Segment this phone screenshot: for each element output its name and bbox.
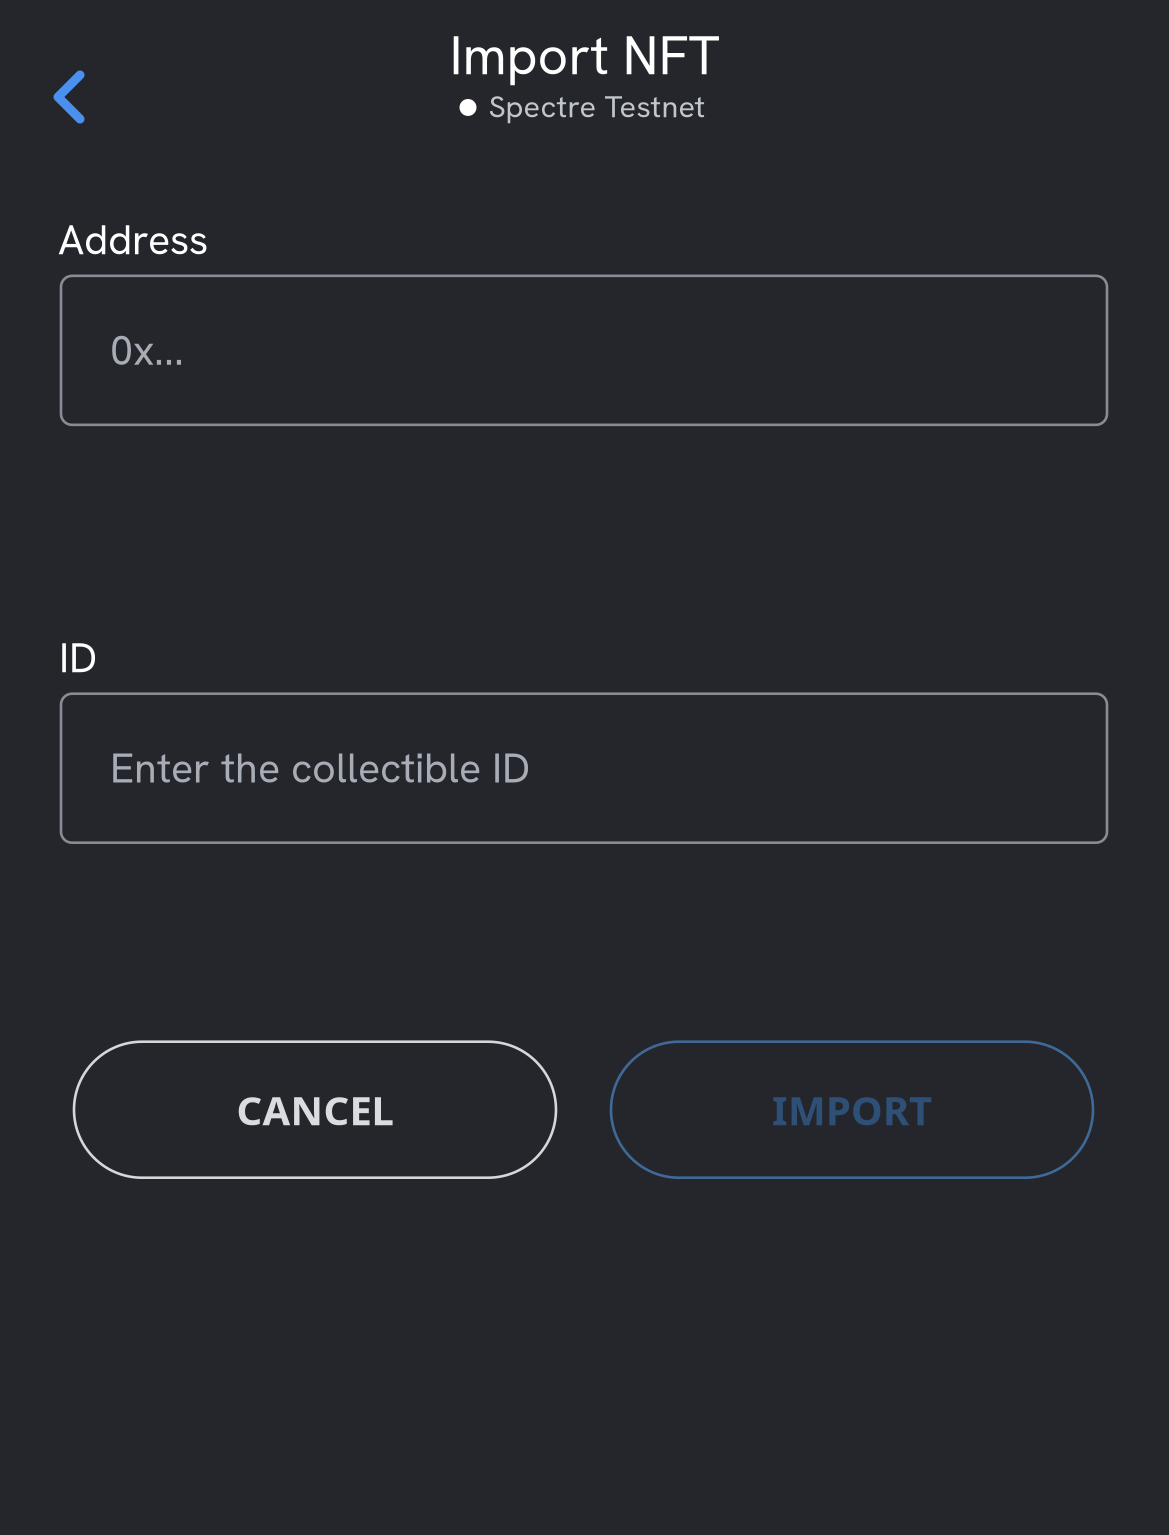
staticText: Address xyxy=(58,213,208,267)
staticText: Import NFT xyxy=(449,21,719,90)
button[interactable]: CANCEL xyxy=(74,1042,556,1178)
staticText: 0x... xyxy=(110,323,184,377)
button[interactable]: IMPORT xyxy=(611,1042,1093,1178)
staticText: CANCEL xyxy=(236,1082,393,1137)
staticText: IMPORT xyxy=(772,1082,932,1137)
button[interactable]: Back xyxy=(23,51,115,143)
button[interactable]: 0x... xyxy=(61,276,1107,425)
staticText: Spectre Testnet xyxy=(488,86,705,126)
staticText: Enter the collectible ID xyxy=(110,741,530,795)
staticText: ID xyxy=(59,631,97,685)
button[interactable]: Enter the collectible ID xyxy=(61,694,1107,843)
